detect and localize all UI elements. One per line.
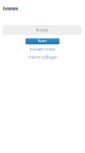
button[interactable]: Home: [25, 38, 59, 44]
staticText: Powered by: [27, 55, 44, 59]
staticText: hmmm: [3, 6, 18, 12]
staticText: No posts.: [35, 28, 48, 32]
staticText: Blogger: [45, 55, 57, 59]
staticText: View web version: [29, 47, 55, 51]
button[interactable]: Blogger: [45, 55, 57, 59]
button[interactable]: View web version: [0, 47, 85, 51]
staticText: Home: [38, 39, 47, 43]
